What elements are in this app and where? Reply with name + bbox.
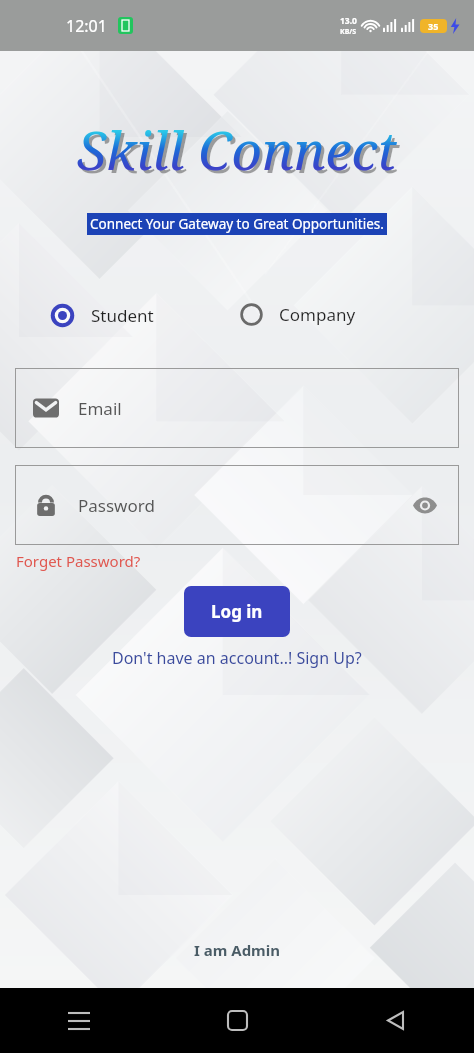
- staticText: 12:01: [66, 15, 107, 37]
- button[interactable]: Recents: [0, 988, 158, 1053]
- button[interactable]: Email: [15, 368, 459, 448]
- staticText: Log in: [211, 600, 263, 623]
- staticText: Connect Your Gateway to Great Opportunit…: [90, 215, 384, 233]
- button[interactable]: Log in: [184, 586, 290, 637]
- button[interactable]: Company: [234, 297, 362, 332]
- staticText: Company: [279, 303, 356, 326]
- button[interactable]: Show password: [409, 493, 441, 518]
- staticText: Forget Password?: [16, 551, 141, 571]
- button[interactable]: Forget Password?: [14, 549, 143, 573]
- button[interactable]: Home: [158, 988, 316, 1053]
- staticText: Password: [78, 494, 155, 517]
- button[interactable]: I am Admin: [184, 936, 290, 964]
- button[interactable]: Password: [15, 465, 459, 545]
- staticText: KB/S: [340, 27, 357, 37]
- staticText: Email: [78, 397, 122, 420]
- button[interactable]: Don't have an account..! Sign Up?: [106, 645, 368, 671]
- staticText: Skill Connect: [80, 116, 400, 188]
- staticText: Don't have an account..! Sign Up?: [112, 647, 362, 669]
- staticText: 35: [428, 20, 439, 32]
- staticText: 13.0: [340, 15, 357, 27]
- button[interactable]: Back: [316, 988, 474, 1053]
- staticText: Skill Connect: [77, 113, 397, 185]
- staticText: I am Admin: [194, 940, 280, 960]
- staticText: Student: [91, 304, 154, 327]
- button[interactable]: Student: [44, 297, 160, 334]
